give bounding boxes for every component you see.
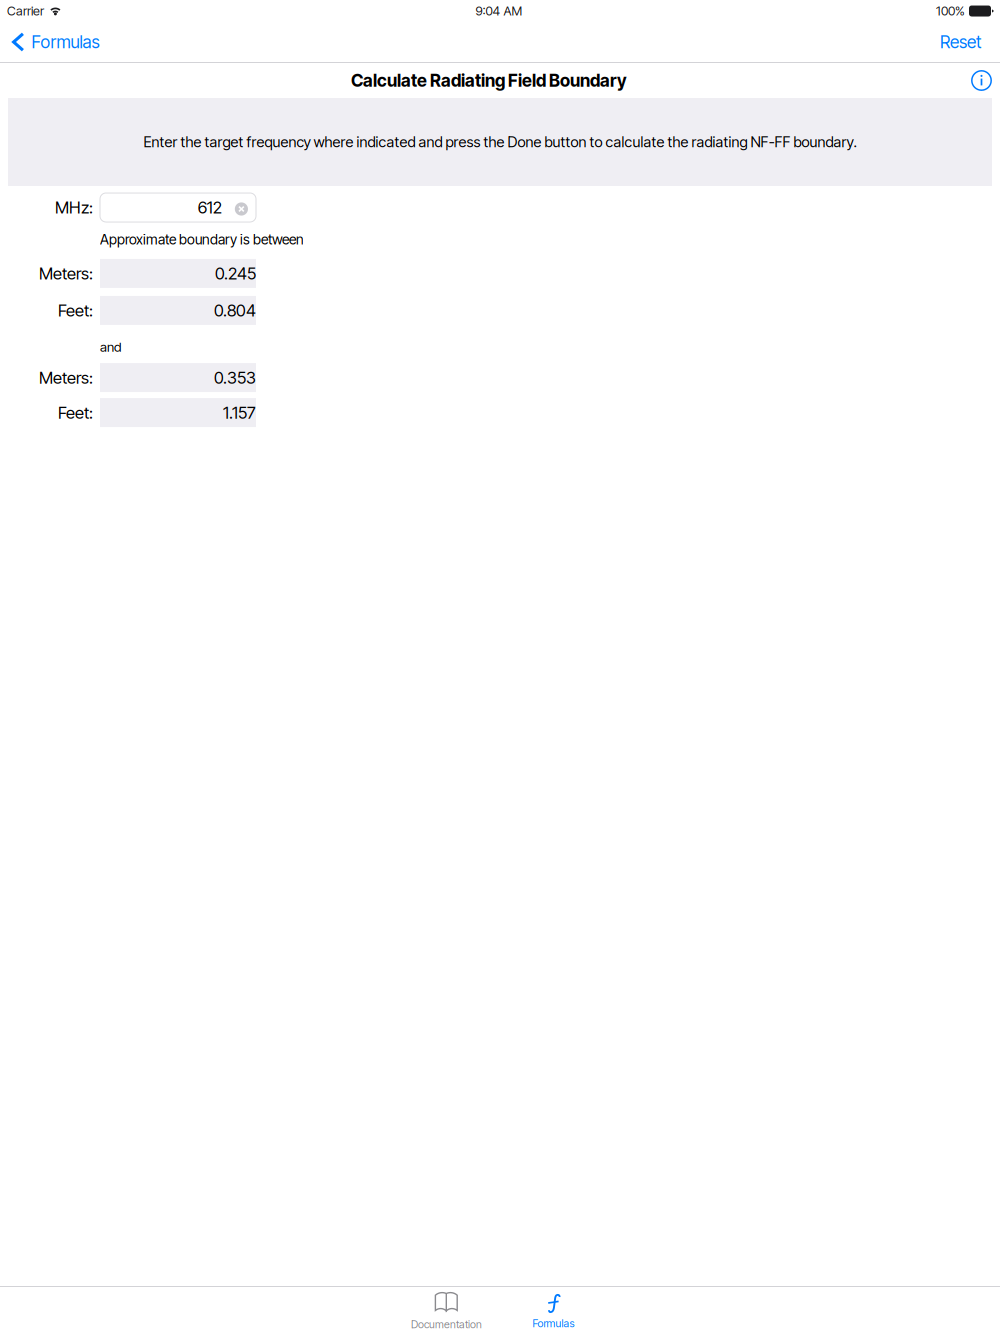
- button[interactable]: 612: [100, 193, 256, 222]
- button[interactable]: Reset: [926, 22, 1000, 62]
- staticText: 1.157: [223, 402, 256, 423]
- staticText: Carrier: [7, 3, 44, 19]
- staticText: Meters:: [39, 367, 93, 388]
- staticText: Approximate boundary is between: [100, 231, 304, 248]
- button[interactable]: Formulas: [0, 22, 109, 62]
- button[interactable]: More information: [963, 63, 1000, 98]
- staticText: 0.804: [214, 300, 256, 321]
- staticText: 0.353: [214, 367, 256, 388]
- staticText: Calculate Radiating Field Boundary: [351, 70, 627, 91]
- staticText: 9:04 AM: [475, 3, 522, 19]
- button[interactable]: Formulas: [500, 1287, 607, 1334]
- button[interactable]: Documentation: [393, 1287, 500, 1334]
- staticText: MHz:: [55, 197, 93, 218]
- staticText: Enter the target frequency where indicat…: [143, 133, 856, 151]
- staticText: Meters:: [39, 263, 93, 284]
- staticText: 612: [198, 197, 222, 218]
- staticText: Reset: [940, 31, 981, 52]
- staticText: Documentation: [411, 1318, 482, 1331]
- staticText: Feet:: [58, 402, 93, 423]
- staticText: 0.245: [215, 263, 256, 284]
- staticText: and: [100, 339, 121, 355]
- staticText: Formulas: [532, 1317, 574, 1330]
- staticText: Feet:: [58, 300, 93, 321]
- staticText: 100%: [936, 3, 965, 19]
- staticText: Formulas: [31, 31, 99, 52]
